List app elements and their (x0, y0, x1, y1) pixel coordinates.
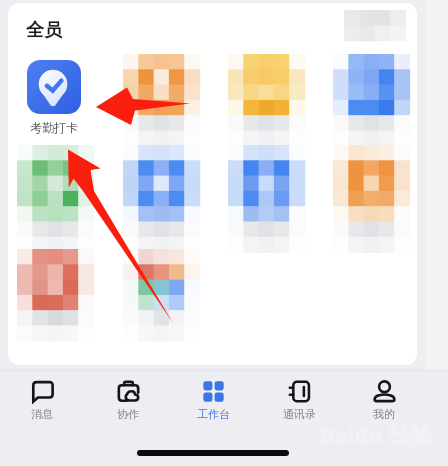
button[interactable]: 消息 (6, 380, 78, 417)
button[interactable]: 通讯录 (263, 380, 335, 417)
button[interactable]: 我的 (348, 380, 420, 417)
staticText: 考勤打卡 (17, 120, 91, 135)
button[interactable]: 考勤打卡 (27, 60, 81, 114)
button[interactable]: 工作台 (177, 380, 249, 417)
staticText: 工作台 (197, 407, 230, 421)
staticText: 我的 (373, 407, 395, 421)
staticText: 通讯录 (283, 407, 316, 421)
button[interactable]: 协作 (92, 380, 164, 417)
staticText: 消息 (31, 407, 53, 421)
staticText: 协作 (117, 407, 139, 421)
staticText: 全员 (26, 19, 62, 42)
